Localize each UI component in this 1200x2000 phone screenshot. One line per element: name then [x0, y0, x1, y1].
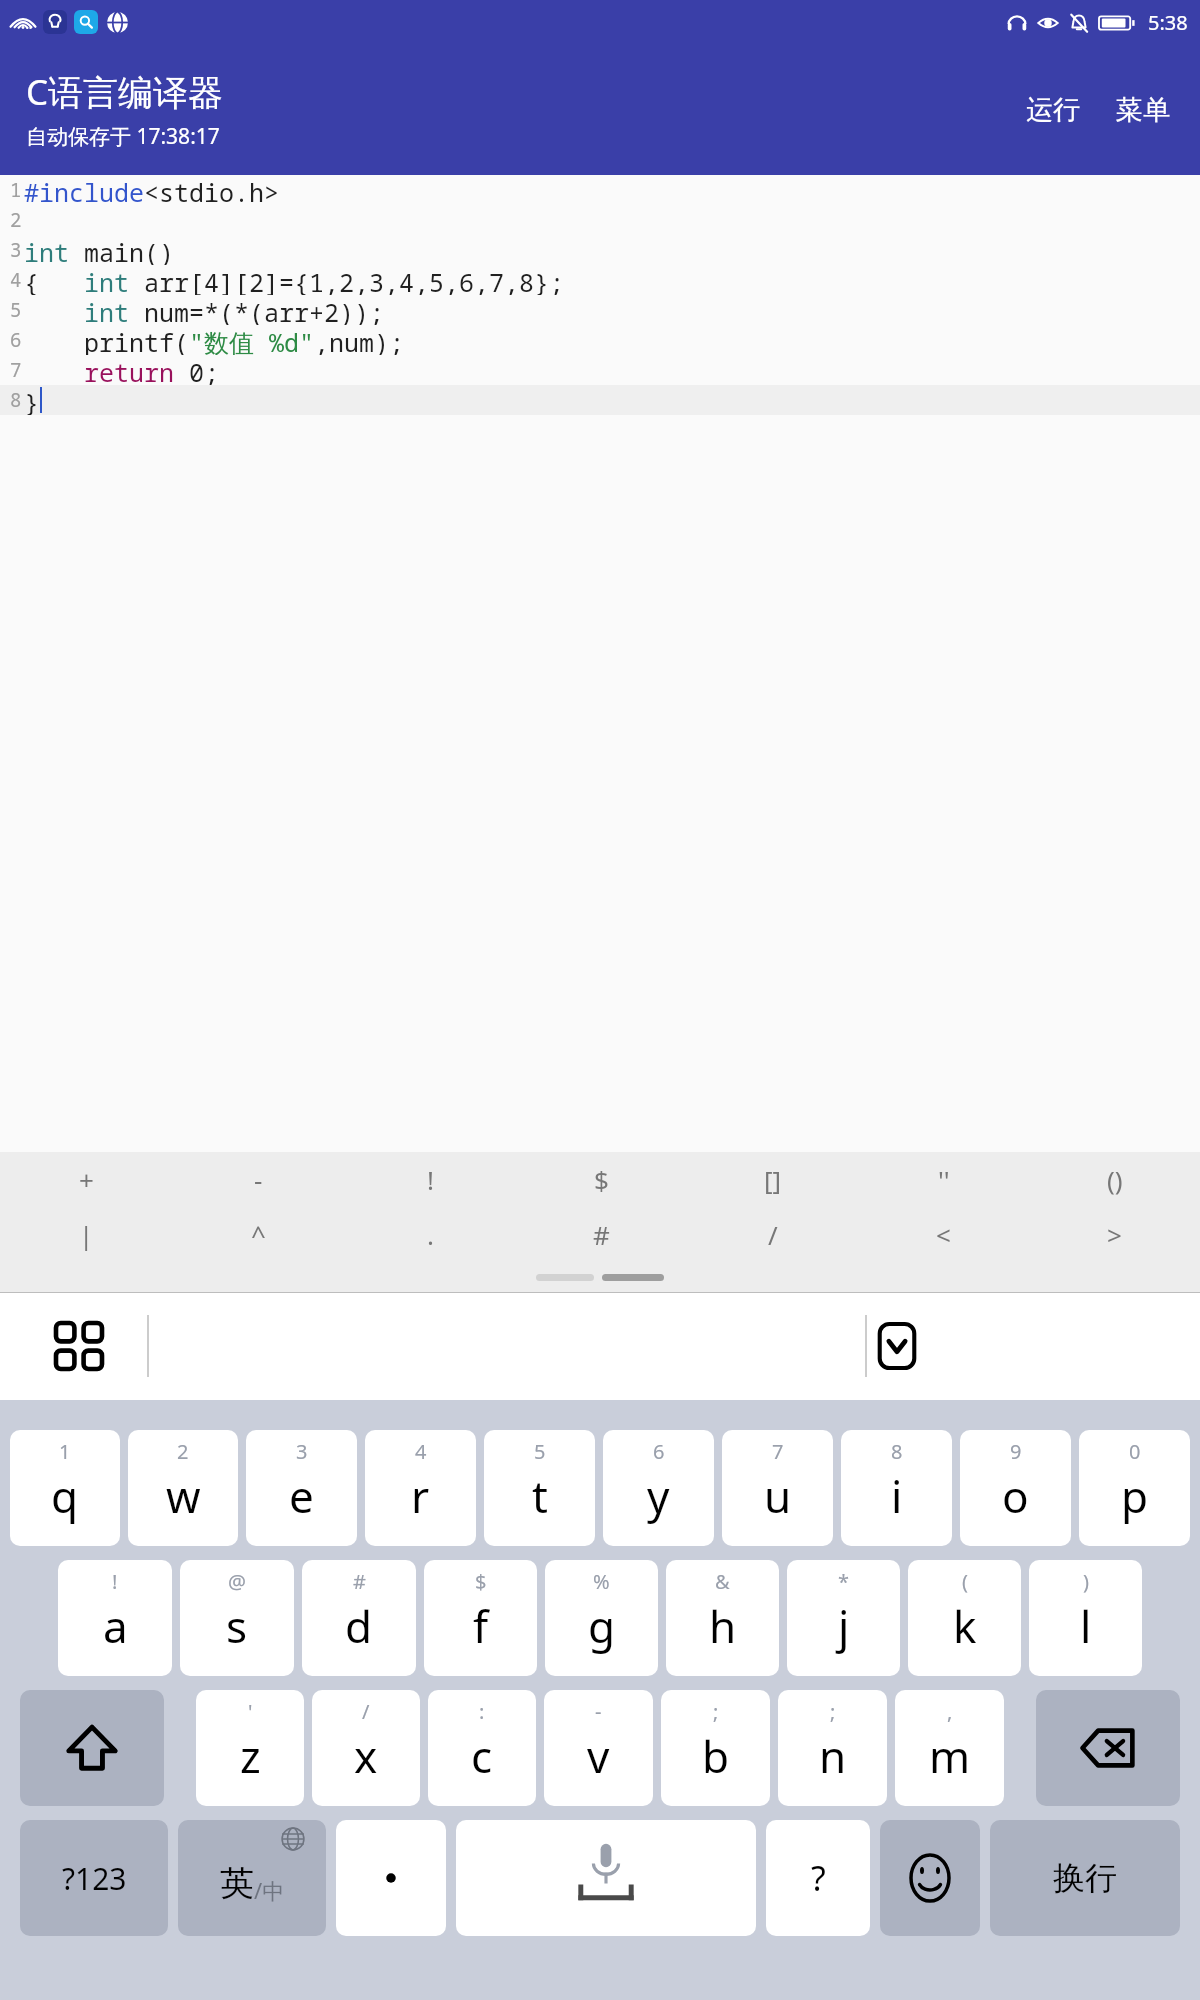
- staticText: <: [936, 1217, 951, 1252]
- button[interactable]: 3: [246, 1430, 357, 1546]
- staticText: 8: [891, 1438, 903, 1465]
- staticText: /: [768, 1217, 778, 1252]
- button[interactable]: Keyboard layouts: [48, 1315, 110, 1377]
- button[interactable]: Backspace: [1036, 1690, 1180, 1806]
- staticText: r: [411, 1466, 430, 1526]
- button[interactable]: 1: [10, 1430, 120, 1546]
- button[interactable]: Hide keyboard: [866, 1315, 928, 1377]
- staticText: '': [938, 1162, 950, 1197]
- staticText: i: [891, 1466, 903, 1526]
- staticText: { int arr[4][2]={1,2,3,4,5,6,7,8};: [24, 265, 565, 295]
- staticText: ?123: [62, 1858, 127, 1899]
- staticText: b: [702, 1726, 730, 1786]
- button[interactable]: .: [344, 1207, 516, 1262]
- button[interactable]: ): [1029, 1560, 1142, 1676]
- button[interactable]: ?123: [20, 1820, 168, 1936]
- staticText: (): [1107, 1162, 1123, 1197]
- button[interactable]: $: [516, 1152, 687, 1207]
- button[interactable]: 2: [128, 1430, 238, 1546]
- button[interactable]: |: [0, 1207, 172, 1262]
- staticText: :: [479, 1698, 485, 1725]
- button[interactable]: Space: [456, 1820, 756, 1936]
- button[interactable]: !: [344, 1152, 516, 1207]
- button[interactable]: ;: [661, 1690, 770, 1806]
- button[interactable]: '': [858, 1152, 1029, 1207]
- button[interactable]: ,: [895, 1690, 1004, 1806]
- button[interactable]: #: [516, 1207, 687, 1262]
- button[interactable]: &: [666, 1560, 779, 1676]
- staticText: int num=*(*(arr+2));: [24, 295, 385, 325]
- staticText: q: [51, 1466, 79, 1526]
- button[interactable]: 9: [960, 1430, 1071, 1546]
- staticText: @: [228, 1568, 246, 1595]
- staticText: #: [593, 1217, 610, 1252]
- button[interactable]: -: [544, 1690, 653, 1806]
- button[interactable]: (): [1029, 1152, 1200, 1207]
- button[interactable]: ^: [172, 1207, 344, 1262]
- staticText: 3: [10, 237, 22, 263]
- staticText: int main(): [24, 235, 175, 265]
- button[interactable]: Shift: [20, 1690, 164, 1806]
- button[interactable]: 0: [1079, 1430, 1190, 1546]
- staticText: g: [588, 1596, 616, 1656]
- staticText: a: [103, 1596, 128, 1656]
- button[interactable]: Emoji: [880, 1820, 980, 1936]
- button[interactable]: 8: [841, 1430, 952, 1546]
- staticText: j: [838, 1596, 850, 1656]
- button[interactable]: ?: [766, 1820, 870, 1936]
- staticText: }: [24, 385, 40, 415]
- staticText: ^: [251, 1217, 266, 1252]
- staticText: u: [764, 1466, 792, 1526]
- staticText: 8: [10, 387, 22, 413]
- staticText: y: [647, 1466, 670, 1526]
- staticText: 换行: [1053, 1858, 1117, 1898]
- button[interactable]: <: [858, 1207, 1029, 1262]
- staticText: .: [427, 1217, 434, 1252]
- staticText: c: [471, 1726, 493, 1786]
- staticText: k: [953, 1596, 977, 1656]
- staticText: 5: [534, 1438, 546, 1465]
- button[interactable]: /: [312, 1690, 420, 1806]
- staticText: -: [595, 1698, 602, 1725]
- button[interactable]: 换行: [990, 1820, 1180, 1936]
- staticText: h: [709, 1596, 737, 1656]
- staticText: C语言编译器: [26, 68, 224, 116]
- button[interactable]: #: [302, 1560, 416, 1676]
- staticText: l: [1080, 1596, 1092, 1656]
- button[interactable]: $: [424, 1560, 537, 1676]
- button[interactable]: 5: [484, 1430, 595, 1546]
- staticText: 0: [1129, 1438, 1141, 1465]
- staticText: /中: [254, 1875, 285, 1905]
- staticText: 3: [296, 1438, 308, 1465]
- button[interactable]: >: [1029, 1207, 1200, 1262]
- button[interactable]: (: [908, 1560, 1021, 1676]
- button[interactable]: %: [545, 1560, 658, 1676]
- staticText: []: [764, 1162, 782, 1197]
- staticText: 1: [59, 1438, 71, 1465]
- button[interactable]: 6: [603, 1430, 714, 1546]
- button[interactable]: 7: [722, 1430, 833, 1546]
- button[interactable]: ;: [778, 1690, 887, 1806]
- button[interactable]: 菜单: [1098, 79, 1200, 141]
- staticText: |: [79, 1217, 94, 1252]
- button[interactable]: +: [0, 1152, 172, 1207]
- staticText: 7: [10, 357, 22, 383]
- button[interactable]: []: [687, 1152, 858, 1207]
- staticText: ,: [947, 1698, 953, 1725]
- button[interactable]: 4: [365, 1430, 476, 1546]
- staticText: t: [532, 1466, 548, 1526]
- staticText: $: [594, 1162, 609, 1197]
- staticText: 9: [1010, 1438, 1022, 1465]
- button[interactable]: ': [196, 1690, 304, 1806]
- button[interactable]: 英: [178, 1820, 326, 1936]
- button[interactable]: Period: [336, 1820, 446, 1936]
- button[interactable]: *: [787, 1560, 900, 1676]
- staticText: p: [1121, 1466, 1149, 1526]
- button[interactable]: !: [58, 1560, 172, 1676]
- button[interactable]: /: [687, 1207, 858, 1262]
- button[interactable]: :: [428, 1690, 536, 1806]
- button[interactable]: -: [172, 1152, 344, 1207]
- button[interactable]: @: [180, 1560, 294, 1676]
- staticText: &: [715, 1568, 730, 1595]
- button[interactable]: 运行: [1008, 79, 1098, 141]
